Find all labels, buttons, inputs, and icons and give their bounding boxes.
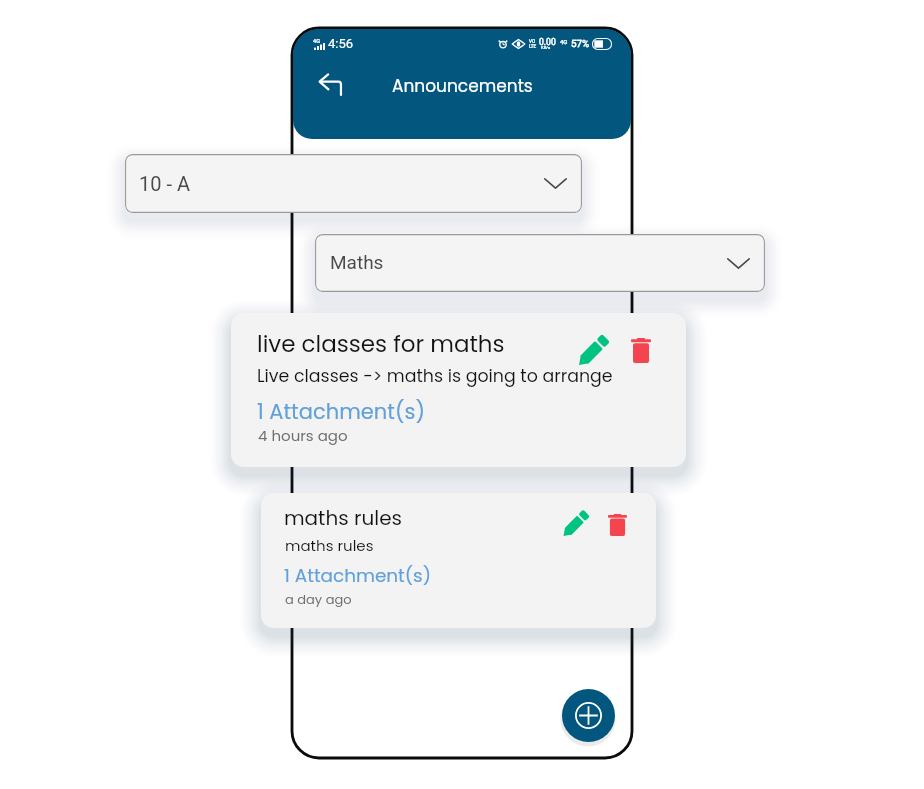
staticText: 4 hours ago — [258, 425, 348, 446]
staticText: Announcements — [392, 74, 533, 98]
staticText: maths rules — [284, 504, 402, 532]
staticText: 1 Attachment(s) — [257, 397, 425, 426]
staticText: 4G — [313, 38, 320, 45]
staticText: 57% — [571, 38, 590, 49]
staticText: 4G — [560, 38, 568, 45]
staticText: maths rules — [285, 535, 374, 556]
button[interactable]: Delete — [631, 338, 651, 363]
staticText: 10 - A — [139, 172, 190, 195]
staticText: Maths — [330, 251, 384, 273]
button[interactable] — [231, 313, 686, 467]
staticText: live classes for maths — [257, 328, 505, 360]
button[interactable]: Edit — [563, 513, 587, 536]
button[interactable] — [261, 493, 656, 628]
button[interactable]: 10 - A — [125, 154, 582, 213]
staticText: KB/s — [541, 45, 551, 50]
staticText: Live classes -> maths is going to arrang… — [257, 364, 613, 388]
staticText: 4:56 — [328, 36, 354, 51]
staticText: 1 Attachment(s) — [284, 563, 432, 589]
button[interactable]: Delete — [608, 514, 627, 536]
button[interactable]: Back — [308, 63, 352, 107]
staticText: a day ago — [285, 590, 352, 608]
button[interactable]: Edit — [579, 338, 606, 365]
staticText: VO LTE — [529, 39, 537, 49]
staticText: 0.00 — [539, 37, 556, 47]
button[interactable]: Maths — [315, 234, 765, 292]
button[interactable]: Add announcement — [562, 689, 615, 742]
